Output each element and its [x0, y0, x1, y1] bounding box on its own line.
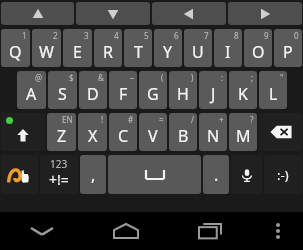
- button[interactable]: Home: [84, 212, 168, 250]
- button[interactable]: :-): [264, 155, 302, 194]
- button[interactable]: (: [139, 71, 167, 109]
- staticText: ,: [91, 164, 96, 186]
- staticText: 0: [294, 30, 299, 41]
- button[interactable]: ?: [229, 113, 257, 151]
- staticText: /: [191, 114, 194, 125]
- staticText: ?: [250, 114, 254, 125]
- staticText: Y: [163, 41, 173, 63]
- button[interactable]: &: [79, 71, 107, 109]
- button[interactable]: ": [259, 71, 287, 109]
- button[interactable]: :: [199, 71, 227, 109]
- button[interactable]: ;: [229, 71, 257, 109]
- button[interactable]: EN: [47, 113, 76, 151]
- staticText: W: [39, 41, 54, 63]
- button[interactable]: Voice input: [231, 155, 262, 194]
- staticText: I: [225, 41, 231, 63]
- button[interactable]: 1: [1, 29, 30, 67]
- staticText: 4: [114, 30, 119, 41]
- button[interactable]: ): [169, 71, 197, 109]
- button[interactable]: Space: [108, 155, 201, 194]
- staticText: 6: [174, 30, 179, 41]
- staticText: J: [211, 83, 216, 105]
- button[interactable]: 4: [94, 29, 122, 67]
- button[interactable]: Hide keyboard: [0, 212, 84, 250]
- staticText: M: [236, 125, 251, 147]
- staticText: 5: [144, 30, 149, 41]
- staticText: U: [192, 41, 204, 63]
- staticText: =: [159, 114, 164, 125]
- staticText: +: [219, 114, 224, 125]
- staticText: ): [191, 72, 194, 83]
- staticText: @: [35, 72, 43, 83]
- staticText: .: [214, 164, 219, 186]
- staticText: +!=: [49, 170, 69, 189]
- staticText: N: [207, 125, 220, 147]
- staticText: H: [177, 83, 189, 105]
- staticText: T: [134, 41, 143, 63]
- button[interactable]: Recent apps: [168, 212, 252, 250]
- button[interactable]: ,: [80, 155, 106, 194]
- staticText: EN: [62, 114, 73, 125]
- staticText: 2: [53, 30, 58, 41]
- button[interactable]: @: [17, 71, 46, 109]
- button[interactable]: 123: [40, 155, 78, 194]
- staticText: G: [147, 83, 159, 105]
- button[interactable]: 7: [184, 29, 212, 67]
- staticText: E: [73, 41, 82, 63]
- button[interactable]: 2: [32, 29, 61, 67]
- staticText: &: [98, 72, 104, 83]
- button[interactable]: 8: [214, 29, 242, 67]
- staticText: C: [118, 125, 129, 147]
- button[interactable]: /: [169, 113, 197, 151]
- staticText: :: [221, 72, 224, 83]
- staticText: O: [252, 41, 265, 63]
- staticText: R: [103, 41, 113, 63]
- button[interactable]: More options: [252, 212, 303, 250]
- staticText: –: [130, 72, 134, 83]
- staticText: K: [238, 83, 248, 105]
- button[interactable]: Backspace: [259, 113, 302, 151]
- staticText: B: [178, 125, 189, 147]
- staticText: A: [26, 83, 37, 105]
- button[interactable]: Arrow right: [228, 2, 302, 25]
- staticText: 1: [22, 30, 27, 41]
- button[interactable]: 9: [244, 29, 272, 67]
- button[interactable]: =: [139, 113, 167, 151]
- staticText: S: [58, 83, 67, 105]
- button[interactable]: Gesture typing: [1, 155, 38, 194]
- staticText: Z: [57, 125, 67, 147]
- staticText: P: [283, 41, 293, 63]
- button[interactable]: $: [48, 71, 77, 109]
- staticText: X: [88, 125, 98, 147]
- staticText: 9: [264, 30, 269, 41]
- staticText: L: [269, 83, 278, 105]
- staticText: D: [87, 83, 99, 105]
- staticText: V: [148, 125, 158, 147]
- button[interactable]: 5: [124, 29, 152, 67]
- staticText: :-): [277, 166, 289, 184]
- staticText: 123: [50, 157, 68, 171]
- button[interactable]: 3: [63, 29, 92, 67]
- button[interactable]: Arrow up: [1, 2, 74, 25]
- staticText: 3: [84, 30, 89, 41]
- staticText: $: [69, 72, 74, 83]
- staticText: #: [128, 114, 134, 125]
- button[interactable]: .: [203, 155, 229, 194]
- staticText: Q: [9, 41, 22, 63]
- button[interactable]: +: [199, 113, 227, 151]
- staticText: 8: [234, 30, 239, 41]
- button[interactable]: !: [78, 113, 107, 151]
- staticText: ;: [251, 72, 254, 83]
- button[interactable]: 6: [154, 29, 182, 67]
- button[interactable]: –: [109, 71, 137, 109]
- button[interactable]: #: [109, 113, 137, 151]
- button[interactable]: 0: [274, 29, 302, 67]
- staticText: ": [280, 72, 284, 83]
- staticText: 7: [204, 30, 209, 41]
- button[interactable]: Shift: [1, 113, 45, 151]
- staticText: F: [119, 83, 128, 105]
- button[interactable]: Arrow left: [152, 2, 226, 25]
- staticText: (: [161, 72, 164, 83]
- button[interactable]: Arrow down: [76, 2, 150, 25]
- staticText: !: [101, 114, 104, 125]
